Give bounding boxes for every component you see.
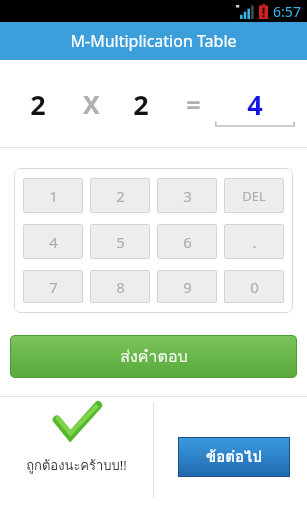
staticText: 3	[183, 186, 192, 206]
button[interactable]: 5	[90, 224, 150, 259]
button[interactable]: DEL	[224, 178, 284, 213]
staticText: ถูกต้องนะคร้าบบ!!	[26, 455, 127, 476]
staticText: ส่งคำตอบ	[120, 344, 188, 369]
button[interactable]: ข้อต่อไป	[178, 437, 290, 477]
button[interactable]: ส่งคำตอบ	[10, 335, 297, 378]
button[interactable]: 4	[23, 224, 83, 259]
staticText: 2	[116, 186, 125, 206]
staticText: =	[186, 87, 201, 121]
staticText: M-Multiplication Table	[70, 30, 237, 52]
button[interactable]: 0	[224, 270, 284, 303]
staticText: 6:57	[273, 2, 301, 21]
button[interactable]: 1	[23, 178, 83, 213]
staticText: X	[83, 87, 100, 121]
staticText: 9	[183, 277, 192, 297]
staticText: 2	[133, 86, 149, 123]
staticText: 4	[247, 86, 263, 123]
staticText: 8	[116, 277, 125, 297]
button[interactable]: .	[224, 224, 284, 259]
staticText: .	[252, 232, 257, 252]
button[interactable]: 9	[157, 270, 217, 303]
button[interactable]: 8	[90, 270, 150, 303]
staticText: 2	[30, 86, 46, 123]
button[interactable]: 6	[157, 224, 217, 259]
staticText: 7	[49, 277, 58, 297]
button[interactable]: 3	[157, 178, 217, 213]
button[interactable]: 7	[23, 270, 83, 303]
staticText: 5	[116, 232, 125, 252]
button[interactable]: 4	[215, 81, 295, 127]
staticText: 1	[49, 186, 58, 206]
staticText: DEL	[242, 187, 266, 205]
staticText: 0	[250, 277, 259, 297]
staticText: 4	[49, 232, 58, 252]
staticText: 6	[183, 232, 192, 252]
staticText: ข้อต่อไป	[206, 445, 262, 469]
button[interactable]: 2	[90, 178, 150, 213]
